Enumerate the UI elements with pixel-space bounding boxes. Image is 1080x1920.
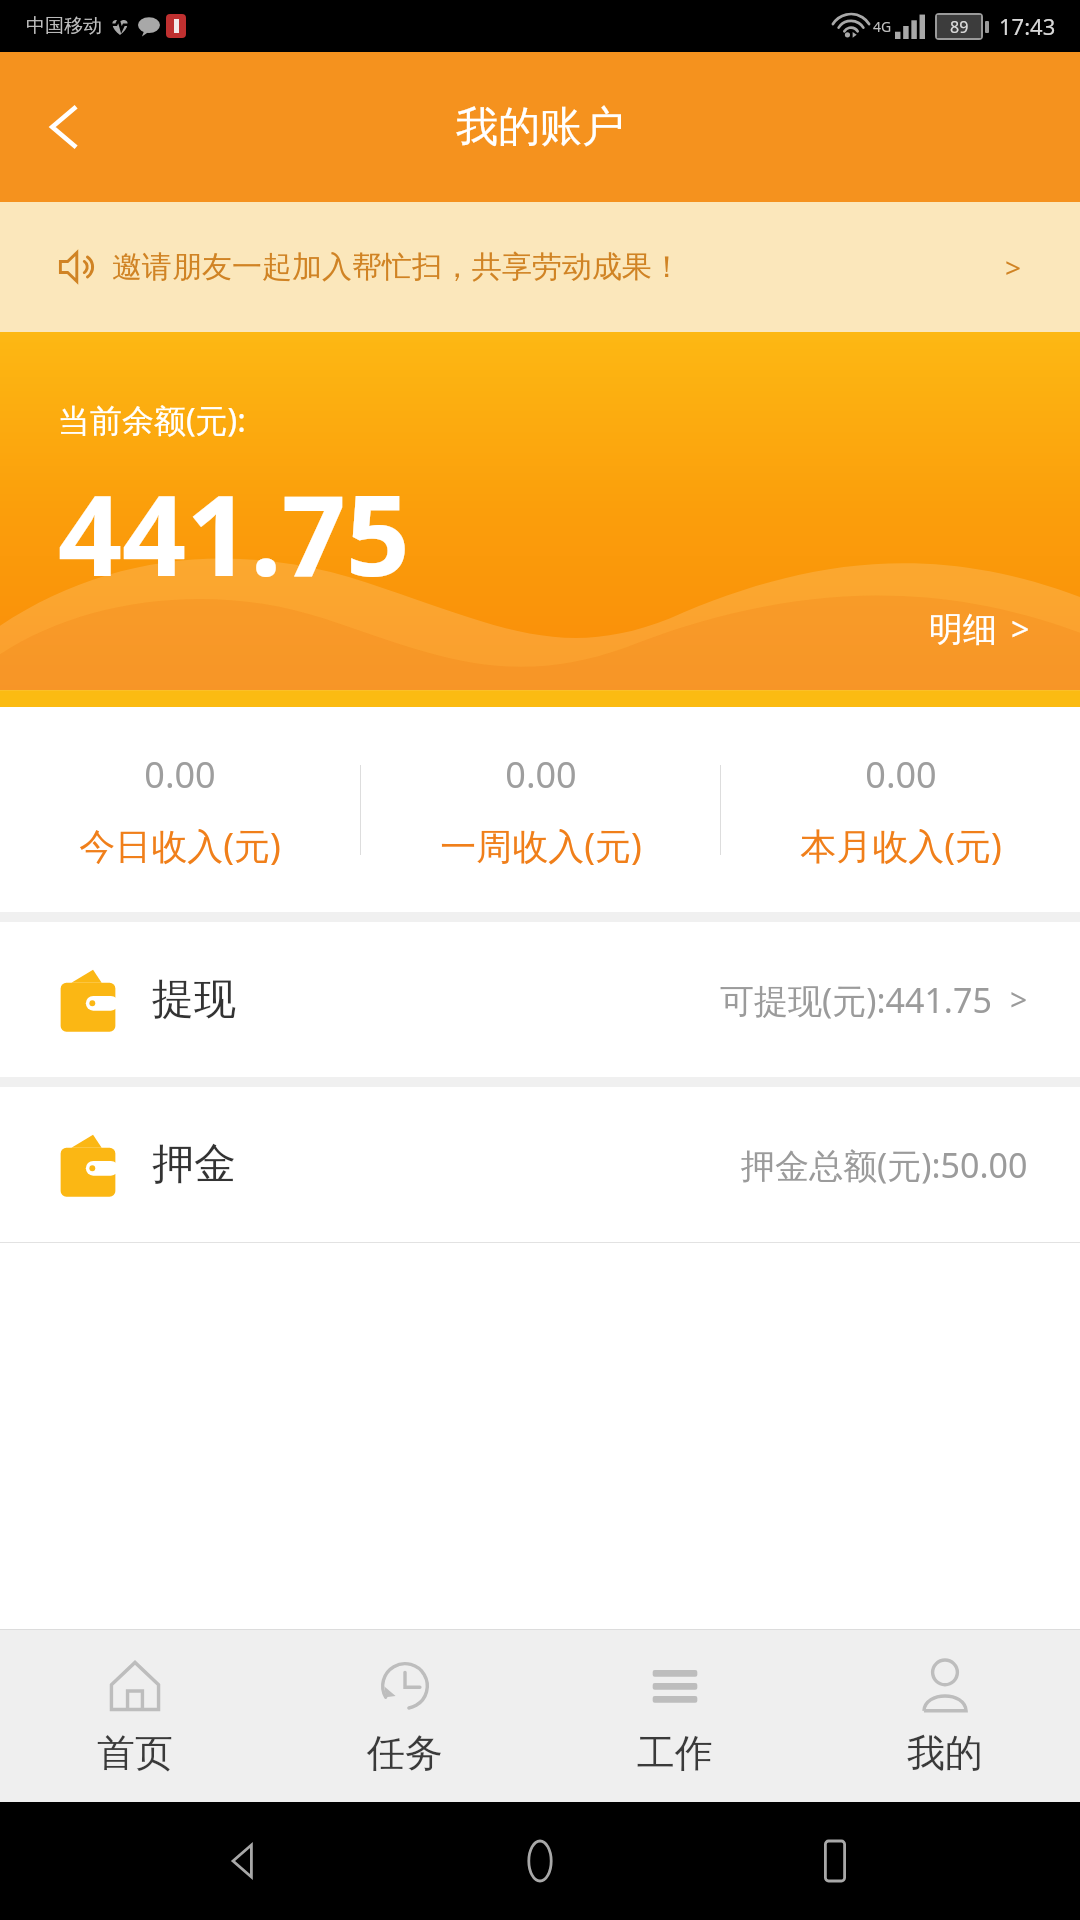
staticText: 17:43 — [999, 11, 1056, 41]
staticText: 中国移动 — [26, 14, 102, 38]
staticText: > — [1005, 248, 1022, 286]
staticText: 工作 — [637, 1729, 713, 1777]
button[interactable]: 0.00 — [361, 707, 720, 912]
button[interactable]: 0.00 — [0, 707, 360, 912]
staticText: 邀请朋友一起加入帮忙扫，共享劳动成果！ — [112, 248, 682, 286]
staticText: 押金 — [152, 1138, 236, 1191]
staticText: 0.00 — [865, 750, 937, 799]
staticText: 0.00 — [505, 750, 577, 799]
staticText: 首页 — [97, 1729, 173, 1777]
staticText: 本月收入(元) — [800, 821, 1002, 870]
button[interactable]: 首页 — [0, 1630, 270, 1802]
button[interactable]: 邀请朋友一起加入帮忙扫，共享劳动成果！ — [0, 202, 1080, 332]
button[interactable]: 0.00 — [721, 707, 1080, 912]
button[interactable]: Home — [490, 1811, 590, 1911]
button[interactable]: Back — [18, 79, 114, 175]
button[interactable]: 押金 — [0, 1087, 1080, 1242]
button[interactable]: 我的 — [810, 1630, 1080, 1802]
button[interactable]: Back — [195, 1811, 295, 1911]
staticText: 我的 — [907, 1729, 983, 1777]
button[interactable]: 工作 — [540, 1630, 810, 1802]
staticText: > — [1011, 607, 1030, 651]
staticText: 441.75 — [58, 456, 410, 609]
staticText: 89 — [950, 16, 969, 38]
staticText: 可提现(元):441.75 — [720, 977, 992, 1023]
staticText: 一周收入(元) — [440, 821, 642, 870]
staticText: 提现 — [152, 973, 236, 1026]
staticText: 明细 — [929, 608, 997, 651]
staticText: 4G — [873, 17, 892, 36]
button[interactable]: 明细 — [929, 607, 1030, 651]
staticText: > — [1010, 979, 1028, 1020]
staticText: 押金总额(元):50.00 — [741, 1142, 1028, 1188]
staticText: 今日收入(元) — [79, 821, 281, 870]
button[interactable]: Recents — [785, 1811, 885, 1911]
staticText: 任务 — [367, 1729, 443, 1777]
staticText: 我的账户 — [456, 101, 624, 154]
staticText: 0.00 — [144, 750, 216, 799]
button[interactable]: 提现 — [0, 922, 1080, 1077]
button[interactable]: 任务 — [270, 1630, 540, 1802]
staticText: 当前余额(元): — [58, 398, 246, 442]
